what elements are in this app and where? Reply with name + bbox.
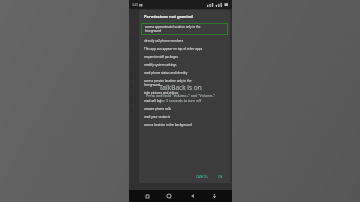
staticText: take pictures and videos: [144, 91, 179, 95]
button[interactable]: OK: [216, 174, 225, 180]
staticText: read call log: [144, 99, 162, 103]
button[interactable]: read phone status and identity: [139, 67, 230, 75]
button[interactable]: modify system settings: [139, 59, 230, 67]
staticText: read phone status and identity: [144, 71, 188, 75]
staticText: OK: [218, 175, 223, 179]
button[interactable]: read call log: [139, 95, 230, 103]
staticText: read your contacts: [144, 115, 171, 119]
button[interactable]: take pictures and videos: [139, 87, 230, 95]
button[interactable]: answer phone calls: [139, 103, 230, 111]
button[interactable]: access approximate location only in the …: [141, 23, 228, 35]
staticText: request install packages: [144, 55, 178, 59]
staticText: Permissions not granted: [144, 14, 193, 19]
staticText: 3:41 ▮▮: [132, 3, 143, 7]
button[interactable]: read your contacts: [139, 111, 230, 119]
staticText: access approximate location only in the …: [145, 25, 201, 33]
staticText: access location in the background: [144, 123, 192, 127]
staticText: modify system settings: [144, 63, 177, 67]
button[interactable]: Home: [164, 191, 174, 201]
staticText: access precise location only in the fore…: [144, 79, 192, 87]
button[interactable]: request install packages: [139, 51, 230, 59]
staticText: This app can appear on top of other apps: [144, 47, 203, 51]
button[interactable]: Back: [187, 191, 197, 201]
button[interactable]: access precise location only in the fore…: [139, 75, 230, 87]
button[interactable]: access location in the background: [139, 119, 230, 127]
staticText: answer phone calls: [144, 107, 171, 111]
staticText: Press and hold "Volume+" and "Volume-" f…: [130, 93, 231, 103]
button[interactable]: This app can appear on top of other apps: [139, 43, 230, 51]
staticText: CANCEL: [196, 175, 209, 179]
button[interactable]: directly call phone numbers: [139, 35, 230, 43]
button[interactable]: CANCEL: [194, 174, 211, 180]
staticText: directly call phone numbers: [144, 39, 184, 43]
button[interactable]: Accessibility: [209, 191, 219, 201]
staticText: TalkBack is on: [130, 83, 231, 92]
button[interactable]: Recents: [142, 191, 152, 201]
